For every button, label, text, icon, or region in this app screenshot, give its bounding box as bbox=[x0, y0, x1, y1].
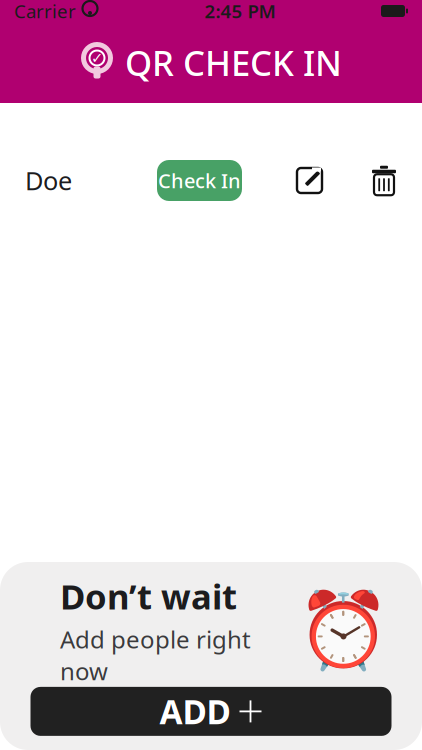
staticText: ⏰ bbox=[297, 587, 390, 673]
staticText: ✓ bbox=[91, 50, 103, 66]
button[interactable]: Doe bbox=[0, 142, 258, 219]
staticText: ADD bbox=[159, 689, 230, 734]
staticText: QR CHECK IN bbox=[125, 39, 342, 85]
button[interactable]: Delete bbox=[361, 157, 407, 203]
staticText: Carrier bbox=[14, 0, 76, 23]
button[interactable]: Edit bbox=[286, 157, 332, 203]
staticText: 2:45 PM bbox=[204, 0, 275, 23]
button[interactable]: ADD bbox=[30, 687, 391, 736]
staticText: Add people right now bbox=[60, 623, 251, 687]
button[interactable]: Check In bbox=[157, 160, 242, 201]
staticText: Doe bbox=[25, 164, 72, 197]
staticText: Check In bbox=[158, 167, 241, 194]
staticText: Don’t wait bbox=[60, 573, 237, 619]
